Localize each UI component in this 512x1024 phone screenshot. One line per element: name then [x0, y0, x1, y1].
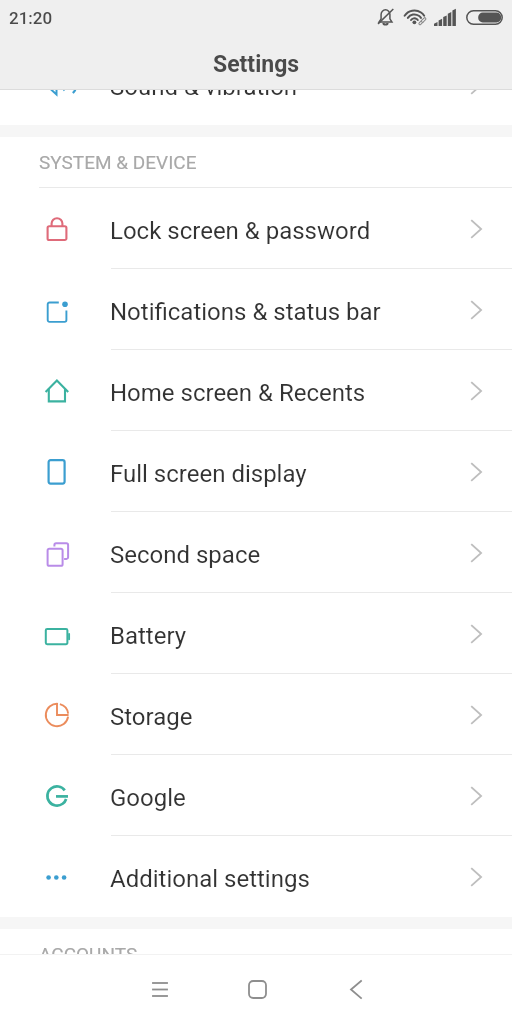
button[interactable]: Home [221, 954, 293, 1024]
staticText: SYSTEM & DEVICE [39, 151, 197, 173]
button[interactable]: Recent apps [124, 954, 196, 1024]
staticText: Home screen & Recents [110, 379, 366, 407]
button[interactable]: Notifications & status bar [0, 269, 512, 350]
staticText: Sound & vibration [110, 73, 298, 101]
staticText: Additional settings [110, 865, 310, 893]
button[interactable]: Battery [0, 593, 512, 674]
button[interactable]: Back [320, 954, 392, 1024]
button[interactable]: Google [0, 755, 512, 836]
staticText: Battery [110, 622, 187, 650]
button[interactable]: Lock screen & password [0, 188, 512, 269]
button[interactable]: Additional settings [0, 836, 512, 917]
staticText: Lock screen & password [110, 217, 371, 245]
staticText: Notifications & status bar [110, 298, 381, 326]
staticText: Full screen display [110, 460, 307, 488]
button[interactable]: Home screen & Recents [0, 350, 512, 431]
staticText: ACCOUNTS [39, 943, 138, 965]
staticText: Second space [110, 541, 261, 569]
staticText: 21:20 [9, 8, 53, 28]
staticText: Settings [213, 51, 300, 78]
button[interactable]: Second space [0, 512, 512, 593]
button[interactable]: Sound & vibration [0, 44, 512, 125]
staticText: Storage [110, 703, 193, 731]
button[interactable]: Storage [0, 674, 512, 755]
staticText: Google [110, 784, 186, 812]
button[interactable]: Full screen display [0, 431, 512, 512]
